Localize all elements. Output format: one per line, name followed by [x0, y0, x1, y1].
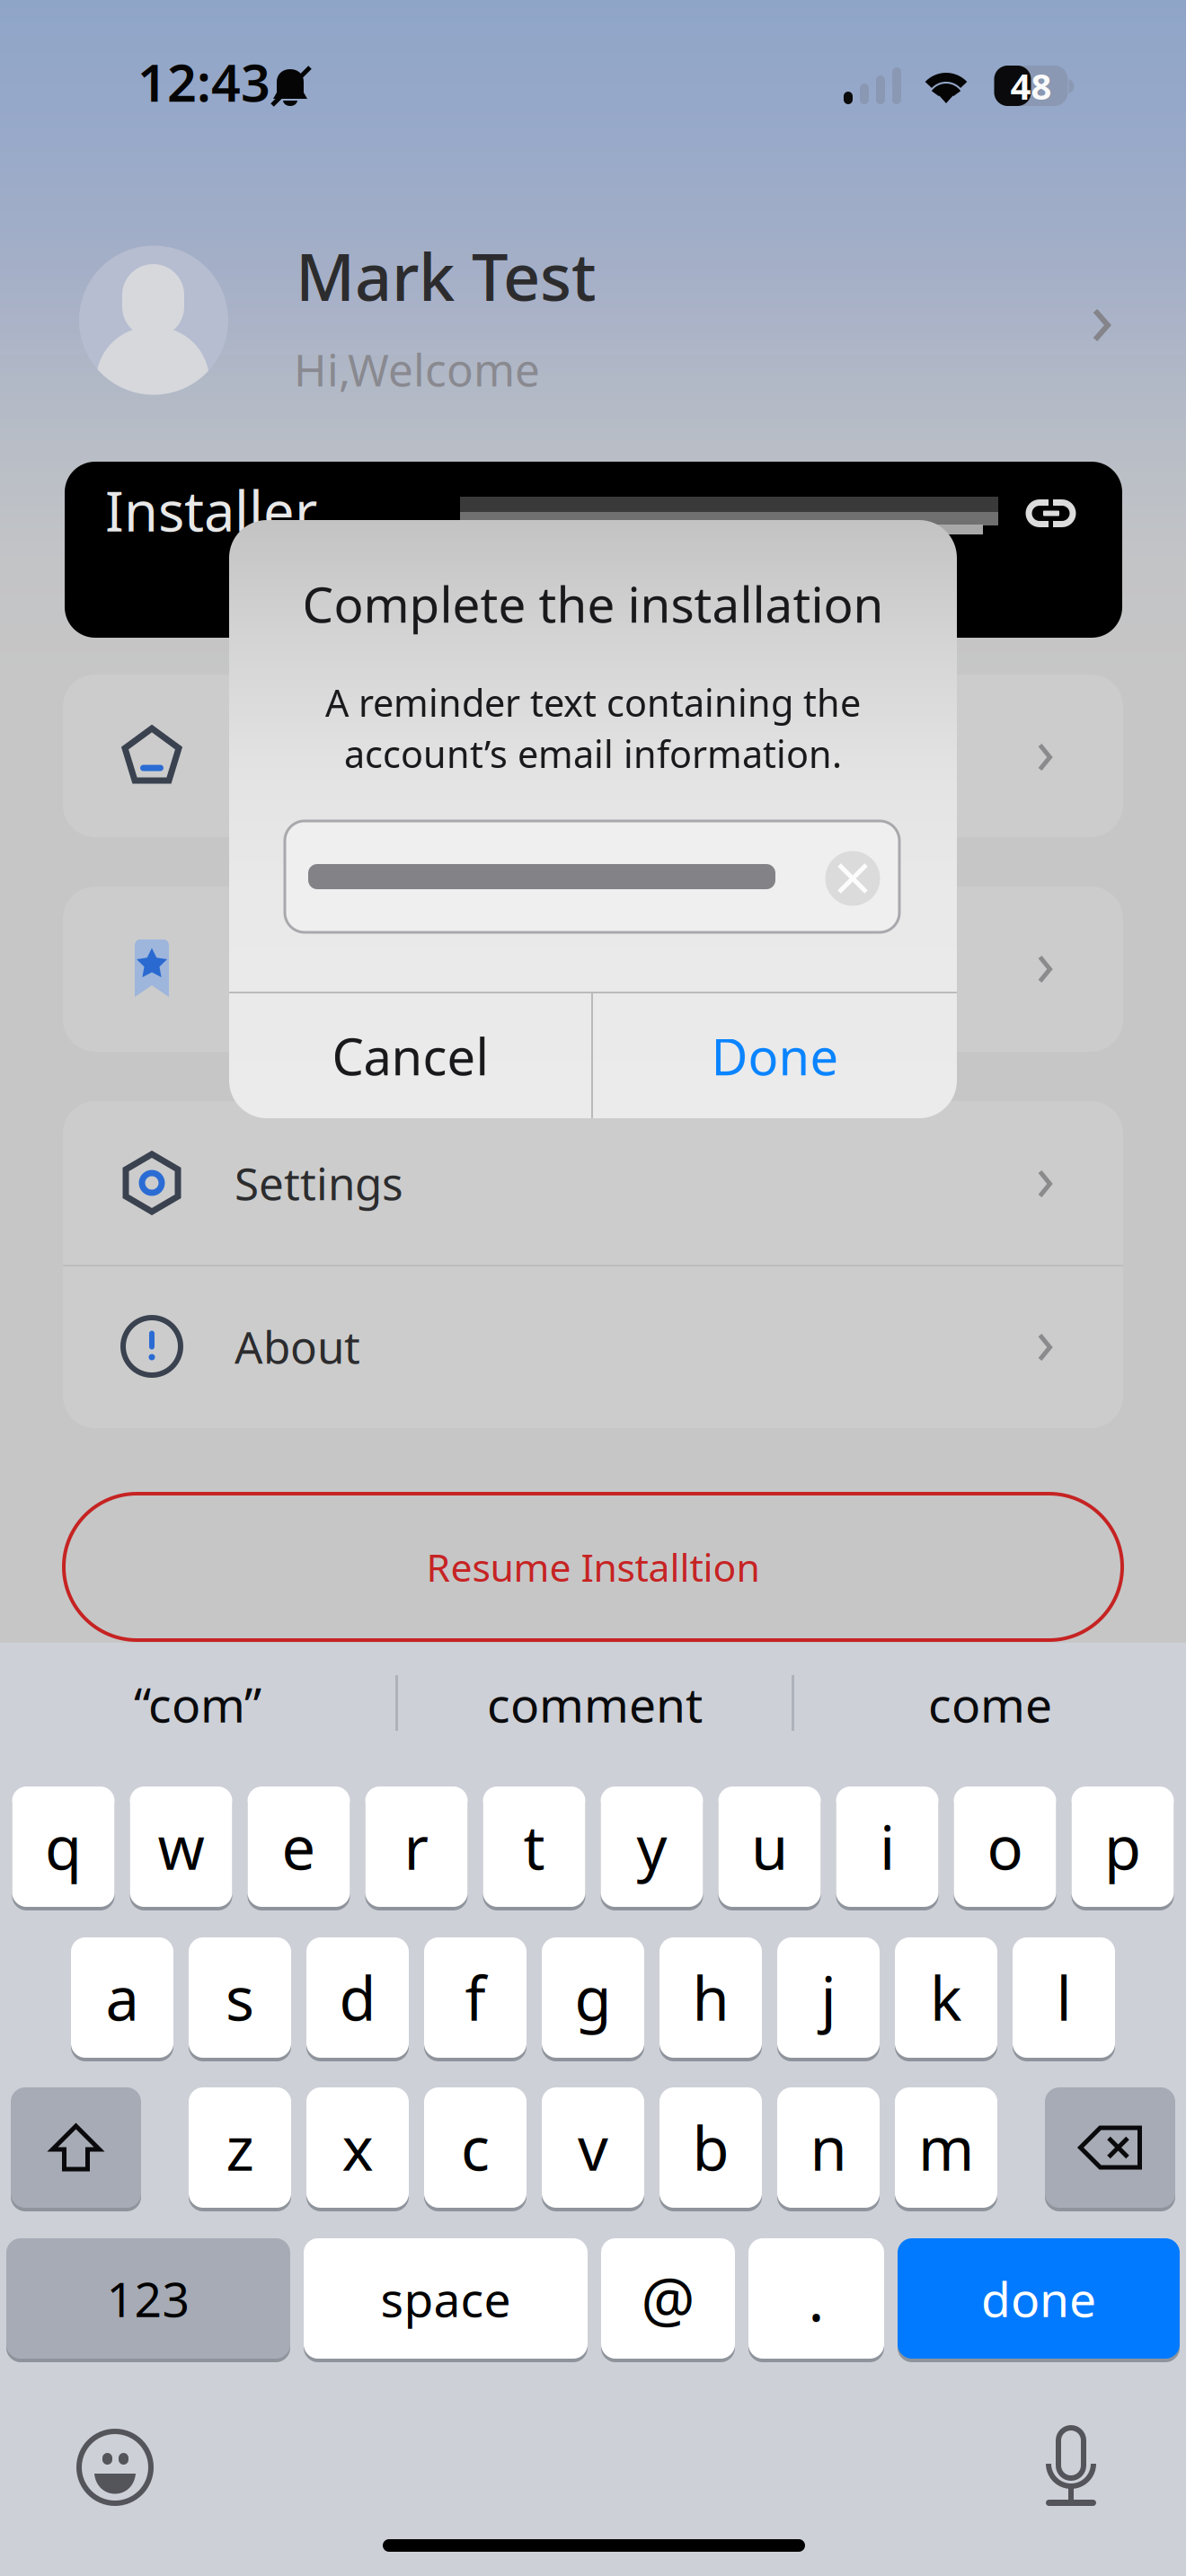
staticText: A reminder text containing the	[325, 678, 861, 727]
staticText: y	[637, 1807, 667, 1886]
button[interactable]: Cancel	[229, 993, 591, 1118]
staticText: o	[987, 1807, 1023, 1886]
staticText: Done	[711, 1022, 839, 1089]
staticText: space	[381, 2267, 511, 2330]
button[interactable]: n	[777, 2087, 880, 2211]
staticText: g	[575, 1958, 611, 2037]
button[interactable]: x	[306, 2087, 409, 2211]
button[interactable]: g	[542, 1937, 644, 2061]
button[interactable]: Settings	[63, 1101, 1123, 1265]
button[interactable]: Done	[593, 993, 957, 1118]
button[interactable]: 123	[6, 2238, 290, 2362]
button[interactable]: m	[895, 2087, 997, 2211]
staticText: h	[692, 1958, 729, 2037]
button[interactable]: space	[304, 2238, 588, 2362]
button[interactable]: @	[601, 2238, 735, 2362]
staticText: f	[465, 1958, 486, 2037]
staticText: b	[692, 2108, 729, 2187]
staticText: p	[1104, 1807, 1141, 1886]
button[interactable]: About	[63, 1265, 1123, 1428]
button[interactable]: d	[306, 1937, 409, 2061]
staticText: a	[106, 1958, 139, 2037]
staticText: j	[821, 1958, 836, 2037]
staticText: Settings	[235, 1153, 403, 1212]
staticText: d	[339, 1958, 376, 2037]
button[interactable]: Shift	[11, 2087, 141, 2211]
staticText: x	[342, 2108, 373, 2187]
staticText: r	[404, 1807, 429, 1886]
staticText: m	[918, 2108, 974, 2187]
button[interactable]: comment	[398, 1661, 792, 1747]
staticText: .	[808, 2259, 824, 2338]
staticText: c	[461, 2108, 490, 2187]
button[interactable]: p	[1071, 1786, 1174, 1910]
button[interactable]	[63, 675, 1123, 838]
button[interactable]: k	[895, 1937, 997, 2061]
staticText: n	[810, 2108, 847, 2187]
button[interactable]: a	[71, 1937, 173, 2061]
staticText: About	[235, 1317, 360, 1376]
staticText: “com”	[134, 1672, 261, 1736]
staticText: Cancel	[332, 1022, 488, 1089]
staticText: l	[1056, 1958, 1071, 2037]
staticText: comment	[487, 1672, 703, 1736]
button[interactable]: .	[748, 2238, 884, 2362]
staticText: Hi,Welcome	[294, 340, 540, 399]
staticText: u	[751, 1807, 788, 1886]
button[interactable]: come	[794, 1661, 1186, 1747]
button[interactable]: b	[659, 2087, 762, 2211]
button[interactable]: Resume Installtion	[64, 1494, 1122, 1640]
button[interactable]	[63, 887, 1123, 1050]
staticText: s	[226, 1958, 254, 2037]
button[interactable]: Dictate	[1046, 2428, 1096, 2506]
button[interactable]: r	[365, 1786, 468, 1910]
button[interactable]: s	[189, 1937, 291, 2061]
staticText: come	[928, 1672, 1052, 1736]
staticText: e	[282, 1807, 316, 1886]
staticText: 48	[1010, 62, 1052, 110]
button[interactable]: z	[189, 2087, 291, 2211]
button[interactable]: c	[424, 2087, 527, 2211]
staticText: t	[523, 1807, 545, 1886]
button[interactable]: i	[836, 1786, 938, 1910]
staticText: account’s email information.	[344, 729, 842, 778]
button[interactable]: e	[248, 1786, 350, 1910]
staticText: Installer	[105, 474, 317, 547]
button[interactable]: u	[718, 1786, 821, 1910]
staticText: q	[45, 1807, 82, 1886]
staticText: 123	[106, 2267, 190, 2330]
button[interactable]: f	[424, 1937, 527, 2061]
staticText: k	[930, 1958, 962, 2037]
button[interactable]: Mark Test	[0, 225, 1186, 419]
staticText: done	[981, 2267, 1096, 2330]
staticText: v	[578, 2108, 608, 2187]
staticText: Complete the installation	[302, 571, 884, 636]
button[interactable]: done	[898, 2238, 1180, 2362]
staticText: @	[641, 2259, 695, 2338]
button[interactable]: t	[483, 1786, 585, 1910]
button[interactable]: Emoji	[79, 2431, 151, 2503]
staticText: 12:43	[137, 48, 270, 116]
button[interactable]: y	[601, 1786, 703, 1910]
button[interactable]: j	[777, 1937, 880, 2061]
button[interactable]: l	[1013, 1937, 1115, 2061]
button[interactable]: v	[542, 2087, 644, 2211]
button[interactable]: w	[130, 1786, 232, 1910]
button[interactable]: o	[954, 1786, 1056, 1910]
staticText: z	[226, 2108, 254, 2187]
staticText: w	[158, 1807, 204, 1886]
button[interactable]: q	[12, 1786, 115, 1910]
button[interactable]: h	[659, 1937, 762, 2061]
button[interactable]: Delete	[1045, 2087, 1175, 2211]
staticText: i	[880, 1807, 895, 1886]
staticText: Resume Installtion	[426, 1541, 760, 1592]
staticText: Mark Test	[296, 233, 597, 319]
button[interactable]: “com”	[0, 1661, 395, 1747]
